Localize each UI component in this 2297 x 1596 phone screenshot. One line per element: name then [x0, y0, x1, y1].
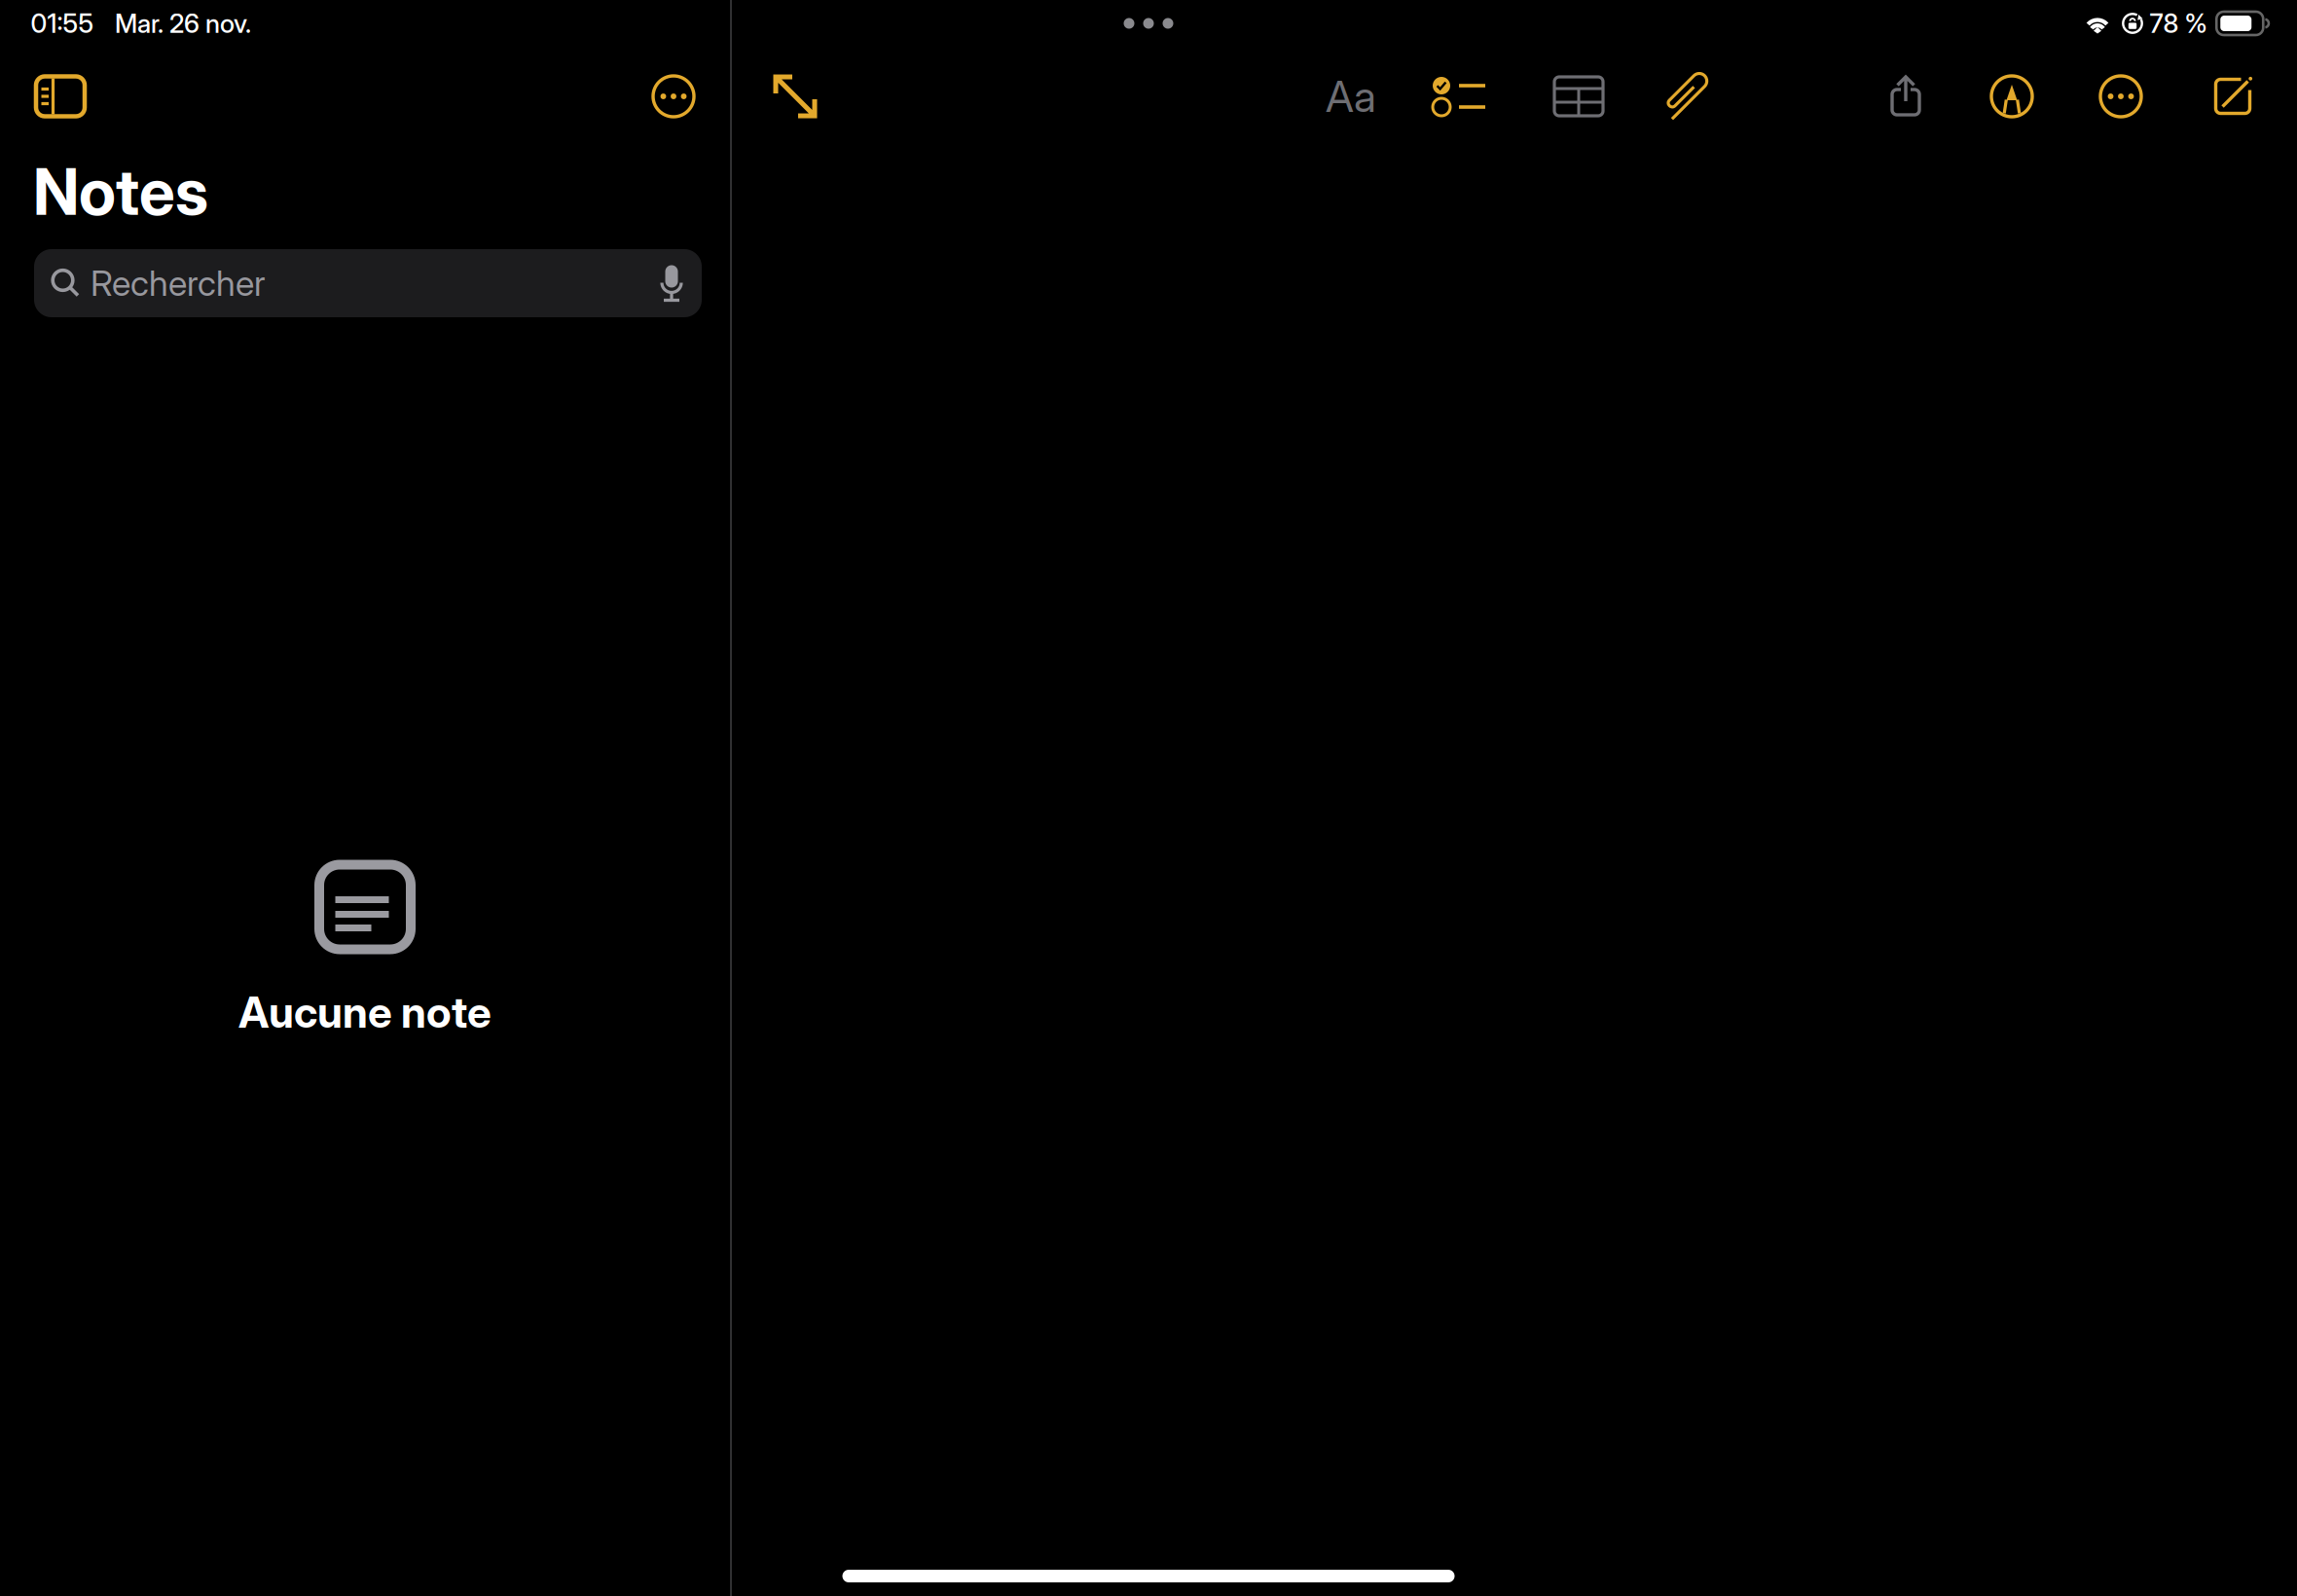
button[interactable]: Markup: [1976, 65, 2048, 127]
staticText: Mar. 26 nov.: [115, 8, 251, 39]
staticText: Rechercher: [91, 263, 266, 304]
staticText: Aucune note: [238, 987, 492, 1037]
staticText: 01:55: [31, 8, 94, 39]
button[interactable]: Table: [1543, 65, 1615, 127]
button[interactable]: Hide sidebar: [24, 67, 96, 126]
staticText: Notes: [33, 154, 208, 229]
button[interactable]: Add attachment: [1651, 65, 1723, 127]
button[interactable]: Rechercher: [34, 249, 702, 317]
button[interactable]: Text format: [1315, 65, 1387, 127]
button[interactable]: New note: [2197, 65, 2269, 127]
button[interactable]: More options: [2085, 65, 2157, 127]
button[interactable]: Share: [1870, 65, 1942, 127]
button[interactable]: Checklist: [1423, 65, 1495, 127]
staticText: 78 %: [2150, 8, 2207, 39]
button[interactable]: Expand note: [759, 65, 831, 127]
button[interactable]: More options: [638, 67, 710, 126]
staticText: Aa: [1326, 71, 1376, 122]
